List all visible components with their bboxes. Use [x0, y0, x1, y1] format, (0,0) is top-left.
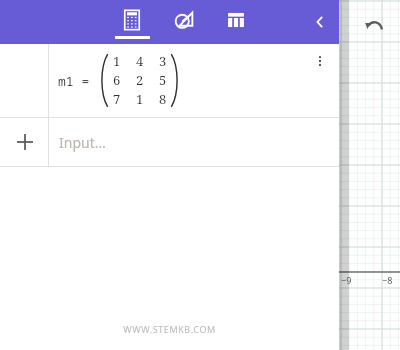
staticText: −8 — [382, 274, 393, 286]
staticText: 4 — [136, 52, 144, 70]
button[interactable]: Geometry — [162, 0, 206, 44]
button[interactable]: Undo — [359, 12, 389, 42]
button[interactable]: Add input — [10, 127, 40, 157]
staticText: 1 — [136, 90, 144, 108]
button[interactable]: Table — [214, 0, 258, 44]
staticText: −9 — [341, 274, 352, 286]
staticText: 1 — [113, 52, 121, 70]
staticText: 6 — [113, 71, 121, 89]
staticText: 5 — [159, 71, 167, 89]
staticText: 3 — [159, 52, 167, 70]
button[interactable]: m1 = — [0, 44, 339, 117]
staticText: Input… — [59, 133, 106, 152]
staticText: m1 = — [58, 72, 90, 90]
staticText: 7 — [113, 90, 121, 108]
button[interactable]: Collapse panel — [300, 2, 340, 42]
staticText: 8 — [159, 90, 167, 108]
button[interactable]: Input… — [49, 117, 388, 167]
staticText: 2 — [136, 71, 144, 89]
button[interactable]: More options — [308, 49, 332, 73]
staticText: WWW.STEMKB.COM — [0, 323, 339, 335]
button[interactable]: Calculator — [110, 0, 154, 44]
